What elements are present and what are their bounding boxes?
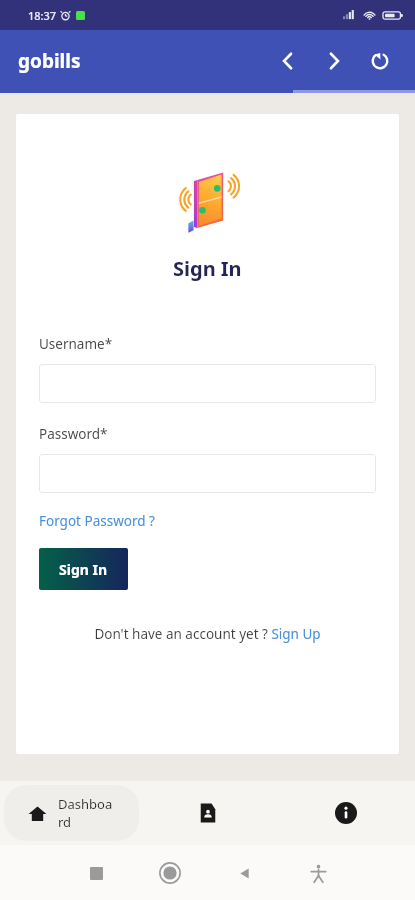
button[interactable]: Back: [265, 38, 311, 84]
button[interactable]: Bills: [139, 802, 277, 824]
staticText: gobills: [18, 48, 81, 74]
staticText: Sign In: [173, 255, 242, 282]
button[interactable]: Sign In: [39, 548, 128, 590]
staticText: 18:37: [28, 8, 57, 23]
staticText: Sign In: [59, 560, 108, 579]
staticText: Dashboard: [58, 795, 115, 831]
button[interactable]: Forward: [311, 38, 357, 84]
button[interactable]: Dashboard: [4, 785, 139, 841]
button[interactable]: About: [277, 802, 415, 824]
staticText: Password*: [39, 425, 108, 443]
button[interactable]: [39, 364, 376, 403]
staticText: Don't have an account yet ? Sign Up: [94, 625, 321, 643]
button[interactable]: Reload: [357, 38, 403, 84]
button[interactable]: Recents: [60, 867, 133, 880]
staticText: Username*: [39, 335, 113, 353]
button[interactable]: Back: [207, 866, 281, 881]
staticText: Forgot Password ?: [39, 512, 155, 530]
button[interactable]: [39, 454, 376, 493]
button[interactable]: Don't have an account yet ? Sign Up: [39, 625, 376, 643]
button[interactable]: Forgot Password ?: [39, 512, 155, 530]
button[interactable]: Home: [133, 862, 207, 884]
button[interactable]: Accessibility: [281, 864, 355, 883]
